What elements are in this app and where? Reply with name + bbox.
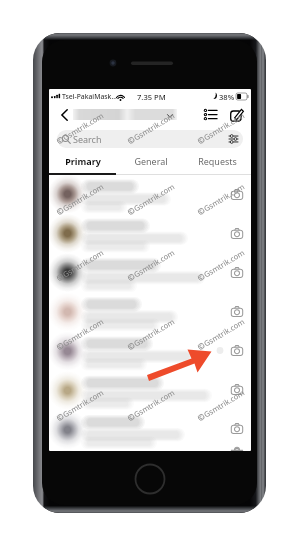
staticText: Gsmtrik.com: [61, 110, 105, 142]
button[interactable]: Camera: [225, 175, 249, 214]
staticText: Primary: [65, 155, 101, 167]
staticText: Gsmtrik.com: [132, 316, 176, 348]
staticText: Gsmtrik.com: [202, 387, 246, 419]
staticText: Gsmtrik.com: [132, 181, 176, 213]
button[interactable]: Camera: [225, 292, 249, 331]
button[interactable]: Back: [54, 103, 74, 126]
button[interactable]: Requests: [184, 151, 251, 175]
button[interactable]: Camera: [225, 253, 249, 292]
button[interactable]: Camera: [225, 409, 249, 448]
staticText: 38%: [219, 92, 235, 102]
staticText: Gsmtrik.com: [61, 247, 105, 279]
staticText: Requests: [198, 155, 237, 167]
button[interactable]: Search: [57, 130, 243, 148]
button[interactable]: Primary: [49, 151, 117, 175]
staticText: Gsmtrik.com: [202, 110, 246, 142]
staticText: Gsmtrik.com: [202, 316, 246, 348]
staticText: Gsmtrik.com: [132, 110, 176, 142]
staticText: Tsel-PakaiMask...: [62, 92, 117, 101]
button[interactable]: New message: [224, 103, 248, 126]
button[interactable]: General: [117, 151, 184, 175]
button[interactable]: Camera: [225, 448, 249, 451]
staticText: Gsmtrik.com: [61, 181, 105, 213]
staticText: Gsmtrik.com: [132, 387, 176, 419]
staticText: General: [134, 155, 168, 167]
staticText: Search: [73, 133, 102, 145]
button[interactable]: Camera: [225, 214, 249, 253]
staticText: Gsmtrik.com: [61, 316, 105, 348]
staticText: Gsmtrik.com: [202, 247, 246, 279]
staticText: Gsmtrik.com: [132, 247, 176, 279]
button[interactable]: Message requests: [199, 103, 221, 126]
button[interactable]: Camera: [225, 370, 249, 409]
button[interactable]: Camera: [225, 331, 249, 370]
staticText: Gsmtrik.com: [202, 181, 246, 213]
staticText: 7.35 PM: [137, 92, 166, 102]
staticText: Gsmtrik.com: [61, 387, 105, 419]
